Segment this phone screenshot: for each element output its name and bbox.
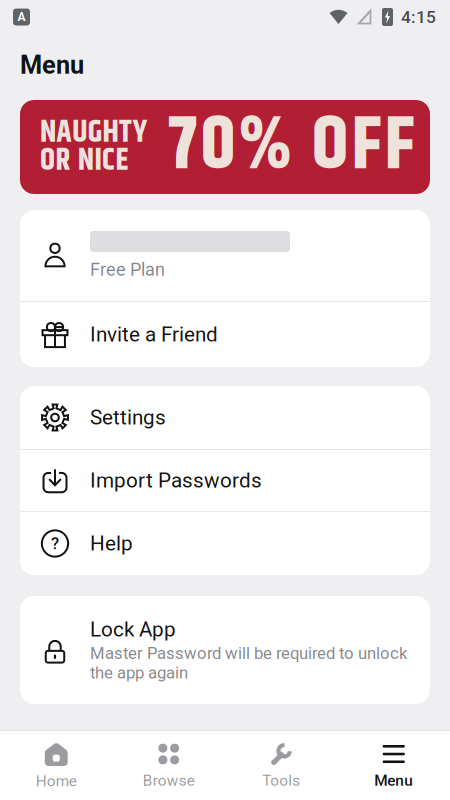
button[interactable]: Menu — [337, 731, 450, 800]
button[interactable]: Tools — [225, 731, 337, 800]
button[interactable]: Settings — [20, 386, 430, 449]
staticText: Lock App — [90, 617, 176, 642]
staticText: Settings — [90, 405, 166, 430]
staticText: Import Passwords — [90, 468, 262, 493]
staticText: OR NICE — [40, 138, 129, 184]
button[interactable]: ? — [20, 512, 430, 575]
staticText: ? — [51, 534, 59, 553]
staticText: Menu — [20, 50, 84, 80]
button[interactable]: Free Plan — [20, 210, 430, 301]
staticText: NAUGHTY — [40, 110, 148, 156]
staticText: Invite a Friend — [90, 322, 218, 347]
button[interactable]: Browse — [112, 731, 225, 800]
button[interactable]: NAUGHTY — [20, 100, 430, 194]
staticText: Browse — [143, 771, 195, 789]
staticText: Free Plan — [90, 259, 165, 280]
staticText: Master Password will be required to unlo… — [90, 644, 407, 683]
button[interactable]: Lock App — [20, 596, 430, 704]
button[interactable]: Import Passwords — [20, 450, 430, 511]
staticText: Home — [36, 772, 77, 790]
staticText: Help — [90, 531, 133, 556]
staticText: 70% OFF — [169, 90, 414, 204]
staticText: Menu — [374, 771, 413, 789]
button[interactable]: Home — [0, 731, 112, 800]
staticText: Tools — [262, 771, 300, 789]
staticText: A — [17, 10, 25, 24]
button[interactable]: Invite a Friend — [20, 302, 430, 367]
staticText: 4:15 — [401, 7, 436, 27]
